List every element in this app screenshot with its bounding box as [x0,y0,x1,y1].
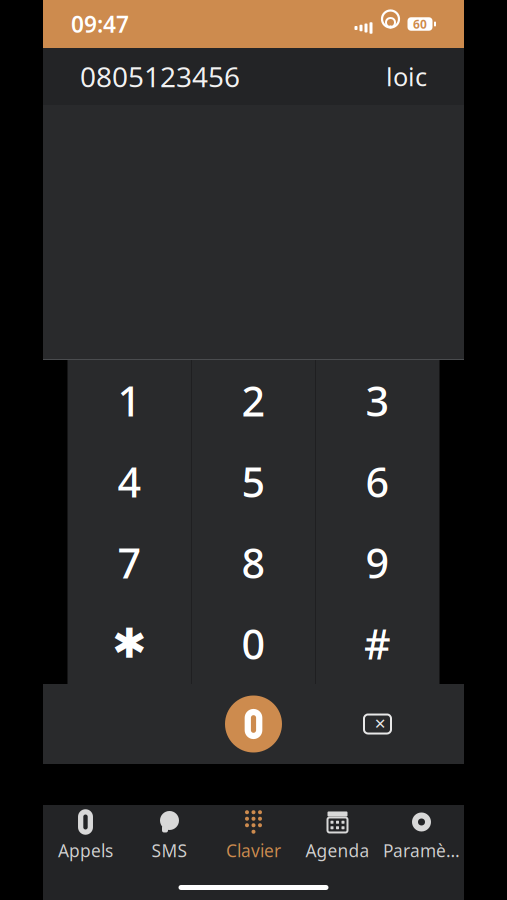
button[interactable]: 5 [191,441,315,522]
button[interactable]: 9 [315,522,439,603]
button[interactable]: 4 [67,441,191,522]
staticText: 09:47 [71,9,129,39]
staticText: 8 [241,535,265,590]
staticText: ✕ [374,716,386,732]
staticText: 4 [117,454,141,509]
button[interactable]: 2 [191,360,315,441]
staticText: ✱ [112,620,147,667]
button[interactable]: 6 [315,441,439,522]
staticText: # [364,616,391,671]
staticText: 5 [241,454,265,509]
staticText: 7 [117,535,141,590]
button[interactable]: SMS [127,810,211,862]
button[interactable]: Effacer [315,684,439,764]
button[interactable]: 1 [67,360,191,441]
button[interactable]: 3 [315,360,439,441]
button[interactable]: ✱ [67,603,191,684]
staticText: Agenda [305,839,369,862]
button[interactable]: Appels [43,810,127,862]
button[interactable]: Appeler [191,684,315,764]
staticText: SMS [151,839,187,862]
staticText: 2 [241,373,265,428]
button[interactable]: Paramè… [379,810,463,862]
staticText: 9 [365,535,389,590]
button[interactable]: 0 [191,603,315,684]
button[interactable]: 8 [191,522,315,603]
staticText: Appels [58,839,113,862]
staticText: 0805123456 [80,58,240,95]
button[interactable]: 7 [67,522,191,603]
staticText: 60 [413,16,427,32]
staticText: 1 [117,373,141,428]
button[interactable]: Agenda [295,810,379,862]
staticText: 3 [365,373,389,428]
staticText: 0 [241,616,265,671]
button[interactable]: # [315,603,439,684]
staticText: 6 [365,454,389,509]
staticText: loic [386,60,427,93]
button[interactable]: Clavier [211,810,295,862]
staticText: Paramè… [383,839,460,862]
staticText: Clavier [226,839,281,862]
